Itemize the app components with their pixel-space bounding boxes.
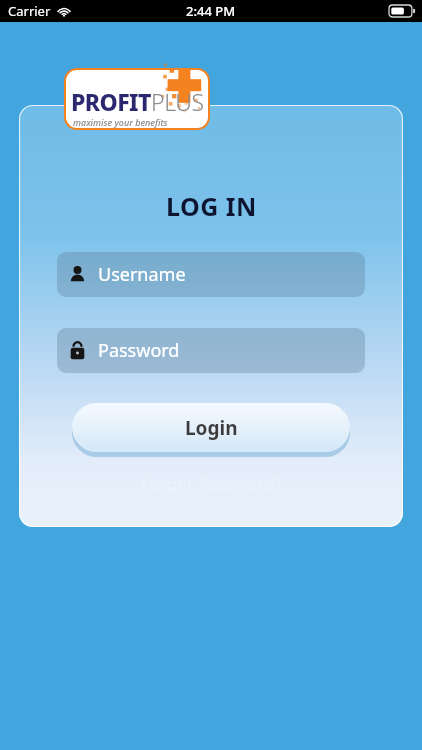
button[interactable]: Password — [57, 328, 365, 373]
staticText: maximise your benefits — [73, 116, 168, 128]
staticText: Login — [185, 415, 238, 441]
staticText: Carrier — [8, 2, 51, 20]
button[interactable]: Username — [57, 252, 365, 297]
staticText: LOG IN — [166, 189, 257, 223]
staticText: 2:44 PM — [186, 2, 236, 20]
staticText: PLUS — [151, 86, 204, 117]
button[interactable]: Login — [72, 403, 350, 452]
staticText: Password — [98, 338, 180, 363]
staticText: PROFIT — [71, 86, 151, 117]
staticText: Username — [98, 262, 186, 287]
